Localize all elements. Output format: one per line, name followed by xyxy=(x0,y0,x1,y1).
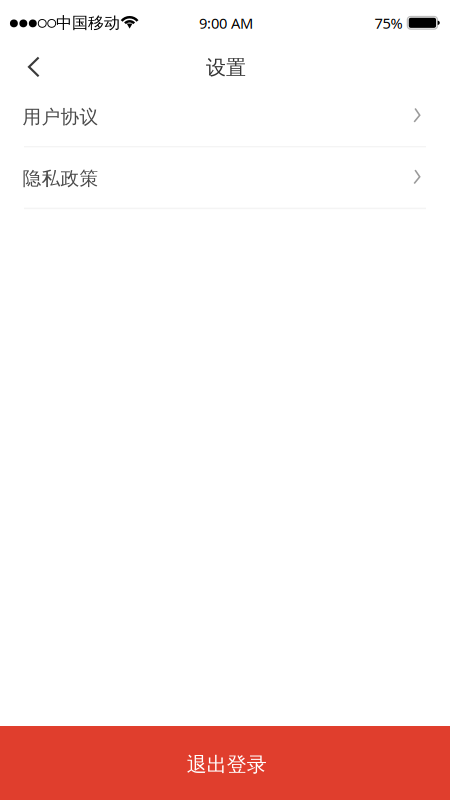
staticText: 9:00 AM xyxy=(199,13,253,33)
button[interactable]: 用户协议 xyxy=(0,86,450,146)
staticText: 用户协议 xyxy=(22,105,98,128)
staticText: 退出登录 xyxy=(187,752,267,777)
button[interactable]: 退出登录 xyxy=(0,726,450,800)
staticText: 75% xyxy=(374,13,402,33)
button[interactable]: 隐私政策 xyxy=(0,148,450,208)
staticText: 设置 xyxy=(206,55,246,80)
staticText: 隐私政策 xyxy=(22,167,98,190)
staticText: 中国移动 xyxy=(56,13,120,33)
button[interactable]: 返回 xyxy=(12,47,56,87)
